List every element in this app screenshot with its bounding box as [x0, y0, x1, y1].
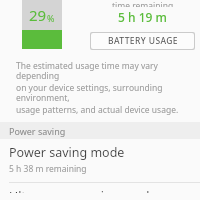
staticText: %: [47, 12, 55, 24]
button[interactable]: Power saving mode: [0, 139, 200, 182]
button[interactable]: Ultra power saving mode: [0, 183, 200, 200]
staticText: Ultra power saving mode: [9, 188, 157, 193]
staticText: 5 h 19 m: [118, 9, 167, 25]
staticText: The estimated usage time may vary depend…: [16, 60, 188, 81]
staticText: usage patterns, and actual device usage.: [16, 104, 179, 116]
staticText: on your device settings, surrounding env…: [16, 82, 188, 103]
staticText: BATTERY USAGE: [108, 35, 178, 47]
staticText: time remaining: [112, 0, 174, 7]
button[interactable]: BATTERY USAGE: [91, 33, 194, 49]
staticText: 29: [29, 5, 47, 25]
staticText: 5 h 38 m remaining: [9, 163, 87, 175]
staticText: Power saving: [9, 125, 66, 137]
staticText: Power saving mode: [9, 144, 125, 161]
